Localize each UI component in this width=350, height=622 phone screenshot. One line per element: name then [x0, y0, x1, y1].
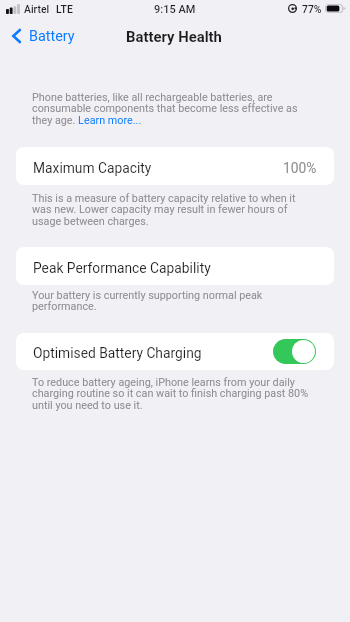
staticText: LTE	[56, 3, 73, 15]
staticText: Your battery is currently supporting nor…	[32, 289, 314, 313]
button[interactable]: Optimised Battery Charging	[16, 333, 334, 370]
staticText: Battery	[29, 28, 75, 45]
button[interactable]: Maximum Capacity	[16, 147, 334, 185]
staticText: To reduce battery ageing, iPhone learns …	[32, 376, 314, 412]
button[interactable]: Peak Performance Capability	[16, 247, 334, 285]
staticText: Maximum Capacity	[33, 160, 152, 176]
staticText: Airtel	[24, 3, 50, 15]
staticText: Optimised Battery Charging	[33, 345, 202, 361]
staticText: Phone batteries, like all rechargeable b…	[32, 91, 314, 127]
staticText: Battery Health	[126, 28, 222, 45]
staticText: Peak Performance Capability	[33, 260, 211, 276]
button[interactable]: Battery	[12, 25, 75, 47]
staticText: 77%	[302, 3, 322, 15]
button[interactable]: Optimised Battery Charging toggle	[273, 339, 316, 364]
staticText: This is a measure of battery capacity re…	[32, 192, 314, 228]
staticText: 9:15 AM	[154, 3, 196, 16]
staticText: 100%	[283, 160, 317, 176]
